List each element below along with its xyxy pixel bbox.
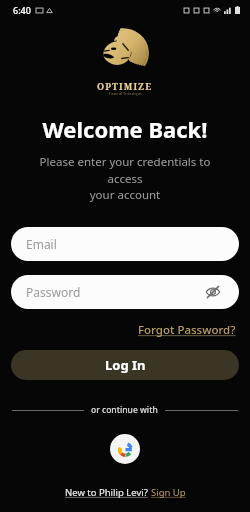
- staticText: OPTIMIZE: [97, 80, 153, 92]
- button[interactable]: Continue with Google: [110, 434, 140, 464]
- staticText: Log In: [105, 356, 146, 374]
- staticText: New to Philip Levi?: [65, 486, 151, 499]
- staticText: 6:40: [13, 4, 31, 16]
- staticText: Please enter your credentials to access …: [22, 154, 228, 202]
- staticText: Sign Up: [151, 486, 186, 499]
- staticText: Financial Technologies: [109, 92, 142, 96]
- staticText: Welcome Back!: [0, 114, 250, 144]
- button[interactable]: Forgot Password?: [136, 321, 238, 339]
- button[interactable]: Email: [11, 227, 239, 261]
- button[interactable]: Log In: [11, 350, 239, 380]
- button[interactable]: Show password: [202, 281, 224, 303]
- staticText: Forgot Password?: [138, 322, 236, 338]
- button[interactable]: New to Philip Levi?: [0, 486, 250, 499]
- staticText: Email: [26, 236, 57, 252]
- staticText: or continue with: [91, 404, 158, 416]
- button[interactable]: Password: [11, 275, 239, 309]
- staticText: Password: [26, 284, 81, 300]
